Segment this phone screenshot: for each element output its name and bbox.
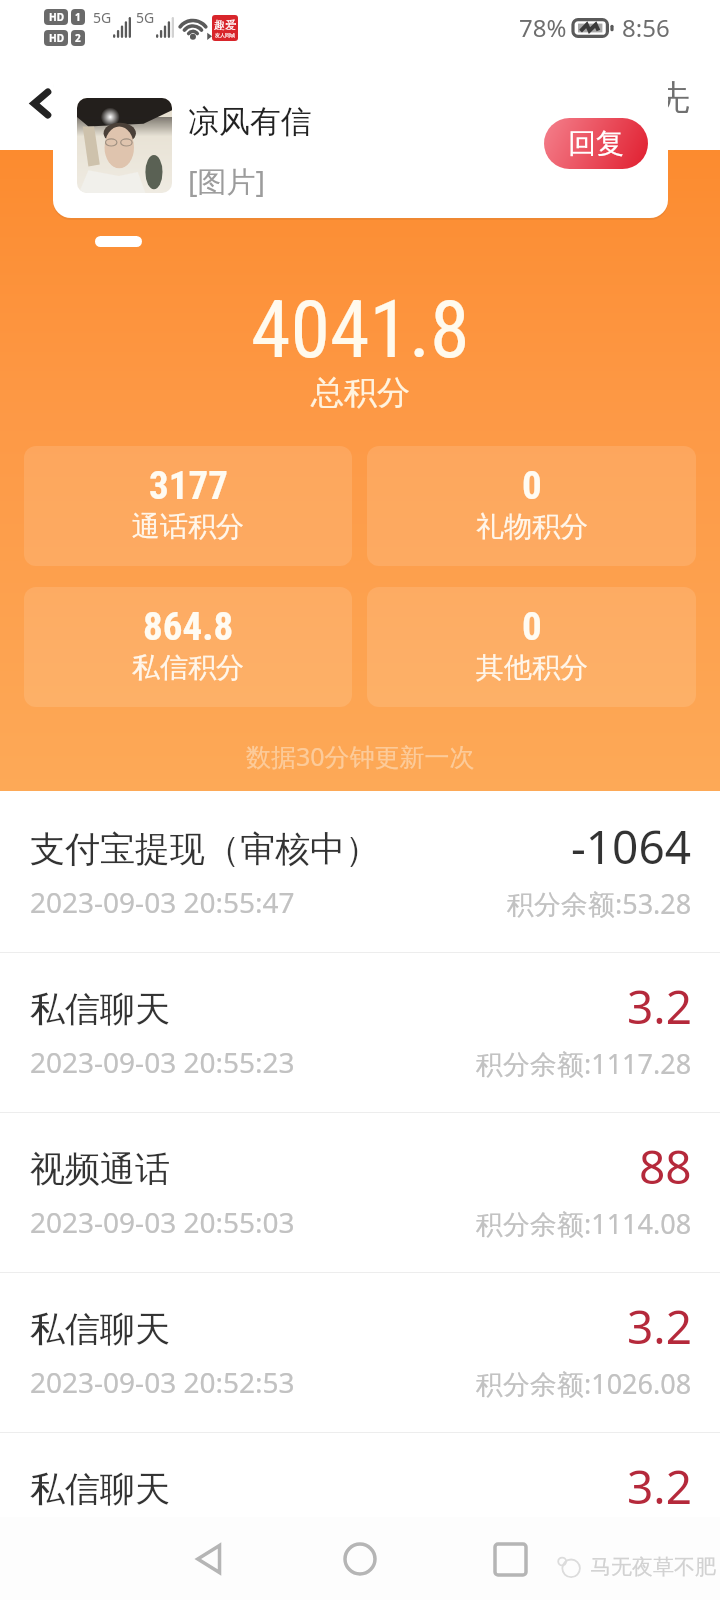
staticText: 2023-09-03 20:55:23 [30, 1043, 295, 1081]
staticText: 数据30分钟更新一次 [246, 739, 475, 773]
staticText: 2 [75, 31, 81, 45]
button[interactable]: Home [328, 1527, 392, 1591]
staticText: 礼物积分 [476, 509, 588, 544]
staticText: 1 [75, 10, 81, 24]
staticText: 积分余额:1114.08 [476, 1205, 692, 1242]
staticText: 总积分 [311, 372, 410, 414]
staticText: 先 [656, 76, 690, 119]
staticText: 积分余额:53.28 [507, 885, 692, 922]
staticText: 视频通话 [30, 1147, 170, 1191]
button[interactable]: 864.8 [24, 587, 352, 707]
staticText: 78% [519, 11, 567, 44]
staticText: 3.2 [627, 1455, 692, 1518]
button[interactable]: 0 [367, 587, 696, 707]
button[interactable]: 支付宝提现（审核中） [0, 793, 720, 953]
staticText: 私信聊天 [30, 987, 170, 1031]
button[interactable]: Recent apps [478, 1527, 542, 1591]
button[interactable]: 回复 [544, 118, 648, 169]
staticText: 支付宝提现（审核中） [30, 827, 380, 871]
staticText: 88 [639, 1135, 692, 1198]
button[interactable]: 凉风有信 [53, 70, 668, 218]
staticText: 4041.8 [251, 283, 470, 377]
staticText: 凉风有信 [188, 102, 312, 141]
staticText: 0 [522, 463, 542, 509]
button[interactable]: 私信聊天 [0, 1273, 720, 1433]
staticText: [图片] [188, 161, 266, 201]
button[interactable]: 私信聊天 [0, 953, 720, 1113]
staticText: 8:56 [622, 11, 670, 44]
staticText: 友人同城 [215, 32, 235, 38]
staticText: 趣爱 [214, 18, 236, 32]
staticText: 私信聊天 [30, 1307, 170, 1351]
staticText: 2023-09-03 20:55:47 [30, 883, 295, 921]
staticText: 5G [93, 8, 112, 27]
staticText: 5G [136, 8, 155, 27]
staticText: 2023-09-03 20:49:12 [30, 1523, 295, 1561]
staticText: 864.8 [143, 604, 234, 650]
staticText: 0 [522, 604, 542, 650]
staticText: 积分余额:1022.88 [476, 1525, 692, 1562]
button[interactable]: 视频通话 [0, 1113, 720, 1273]
staticText: -1064 [571, 815, 692, 878]
button[interactable]: Back [12, 74, 70, 132]
staticText: 其他积分 [476, 650, 588, 685]
staticText: 积分余额:1117.28 [476, 1045, 692, 1082]
staticText: 3177 [149, 463, 228, 509]
button[interactable]: Back [178, 1527, 242, 1591]
staticText: 2023-09-03 20:55:03 [30, 1203, 295, 1241]
staticText: HD [49, 10, 64, 24]
staticText: 3.2 [627, 975, 692, 1038]
button[interactable]: 0 [367, 446, 696, 566]
staticText: 私信积分 [132, 650, 244, 685]
staticText: 回复 [568, 126, 624, 161]
button[interactable]: 3177 [24, 446, 352, 566]
staticText: HD [49, 31, 64, 45]
button[interactable]: 私信聊天 [0, 1433, 720, 1593]
staticText: 积分余额:1026.08 [476, 1365, 692, 1402]
staticText: 私信聊天 [30, 1467, 170, 1511]
staticText: 通话积分 [132, 509, 244, 544]
staticText: 2023-09-03 20:52:53 [30, 1363, 295, 1401]
staticText: 3.2 [627, 1295, 692, 1358]
staticText: 马无夜草不肥 [590, 1554, 716, 1580]
